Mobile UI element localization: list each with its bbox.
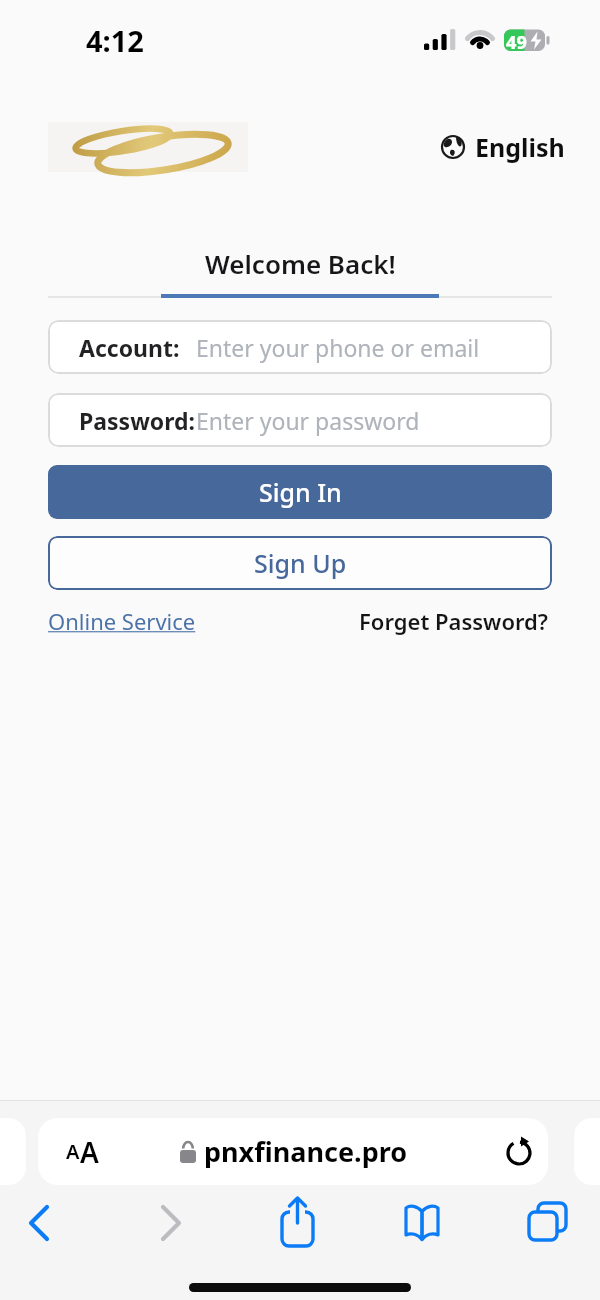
button[interactable]: Password: <box>48 393 552 447</box>
button[interactable] <box>279 1195 316 1249</box>
staticText: Enter your phone or email <box>196 332 480 363</box>
staticText: 4:12 <box>86 21 144 60</box>
staticText: Sign In <box>259 475 342 509</box>
button[interactable] <box>154 1204 184 1242</box>
staticText: pnxfinance.pro <box>204 1133 408 1170</box>
staticText: English <box>475 130 565 164</box>
staticText: Enter your password <box>196 405 420 436</box>
staticText: 49 <box>506 30 527 55</box>
staticText: A <box>80 1133 99 1171</box>
button[interactable] <box>403 1203 441 1245</box>
button[interactable]: A <box>38 1118 548 1185</box>
staticText: Password: <box>79 405 196 436</box>
button[interactable]: Sign Up <box>48 536 552 590</box>
staticText: Sign Up <box>254 546 347 580</box>
button[interactable]: Forget Password? <box>359 606 548 636</box>
button[interactable]: English <box>440 130 565 164</box>
button[interactable] <box>527 1201 568 1244</box>
staticText: Welcome Back! <box>205 246 396 281</box>
button[interactable] <box>26 1204 56 1242</box>
button[interactable]: Online Service <box>48 606 196 636</box>
staticText: Account: <box>79 332 180 363</box>
button[interactable] <box>504 1135 536 1168</box>
button[interactable]: A <box>66 1118 99 1185</box>
staticText: A <box>66 1138 80 1165</box>
button[interactable]: Account: <box>48 320 552 374</box>
button[interactable]: Sign In <box>48 465 552 519</box>
